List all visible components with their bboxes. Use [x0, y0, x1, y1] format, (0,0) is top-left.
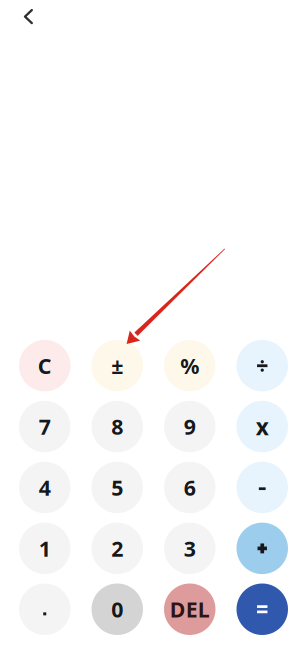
staticText: 3 [184, 534, 196, 562]
staticText: 6 [184, 473, 196, 502]
staticText: 0 [111, 595, 123, 623]
button[interactable]: Plus minus [91, 340, 143, 391]
staticText: 9 [184, 412, 196, 441]
button[interactable]: 0 [91, 583, 143, 635]
button[interactable]: 6 [164, 462, 215, 513]
staticText: 2 [111, 534, 123, 562]
staticText: ± [111, 351, 123, 380]
button[interactable]: 7 [19, 401, 70, 452]
button[interactable]: Divide [236, 340, 288, 391]
staticText: 8 [111, 412, 123, 441]
staticText: x [256, 411, 269, 442]
button[interactable]: 3 [164, 523, 215, 574]
button[interactable]: Minus [236, 462, 288, 513]
staticText: 1 [39, 534, 51, 562]
button[interactable]: Delete [164, 583, 215, 635]
staticText: 5 [111, 473, 123, 502]
button[interactable]: 9 [164, 401, 215, 452]
staticText: C [38, 351, 52, 380]
button[interactable]: Back [0, 0, 56, 34]
button[interactable]: 4 [19, 462, 70, 513]
button[interactable]: Plus [236, 523, 288, 574]
button[interactable]: 8 [91, 401, 143, 452]
staticText: 7 [39, 412, 51, 441]
button[interactable]: Multiply [236, 401, 288, 452]
button[interactable]: Clear [19, 340, 70, 391]
staticText: % [180, 351, 199, 380]
button[interactable]: 5 [91, 462, 143, 513]
button[interactable]: Percent [164, 340, 215, 391]
staticText: 4 [39, 473, 51, 502]
button[interactable]: Decimal point [19, 583, 70, 635]
button[interactable]: 2 [91, 523, 143, 574]
button[interactable]: 1 [19, 523, 70, 574]
button[interactable]: Equals [236, 583, 288, 635]
staticText: DEL [170, 595, 210, 623]
